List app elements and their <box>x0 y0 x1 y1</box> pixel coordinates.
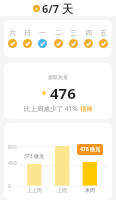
button[interactable]: 二 <box>51 29 66 48</box>
staticText: 476 微克 <box>80 146 100 153</box>
other: Streak <box>33 5 40 12</box>
staticText: 很棒 <box>80 105 93 113</box>
staticText: 476 <box>50 83 76 103</box>
staticText: 0 <box>8 183 11 190</box>
staticText: 800 <box>8 144 17 151</box>
staticText: 五 <box>100 29 107 37</box>
staticText: 400 <box>8 160 17 167</box>
staticText: 二 <box>55 29 62 37</box>
staticText: 上周 <box>57 187 67 193</box>
staticText: 比上周减少了 41% <box>24 104 80 113</box>
staticText: 四 <box>85 29 92 37</box>
button[interactable]: 六 <box>5 29 20 48</box>
button[interactable]: 一 <box>35 29 50 48</box>
button[interactable]: 四 <box>81 29 96 48</box>
staticText: 6/7 天 <box>42 1 74 16</box>
button[interactable]: Streak <box>33 1 74 16</box>
staticText: 六 <box>9 29 16 37</box>
button[interactable]: 摄取热量 <box>4 63 112 119</box>
button[interactable]: 三 <box>66 29 81 48</box>
staticText: 373 微克 <box>24 153 44 160</box>
staticText: 摄取热量 <box>48 74 68 80</box>
button[interactable]: 五 <box>96 29 111 48</box>
staticText: 日 <box>24 29 31 37</box>
staticText: 三 <box>70 29 77 37</box>
button[interactable]: 日 <box>20 29 35 48</box>
staticText: 上上周 <box>27 187 42 193</box>
staticText: 本周 <box>85 187 95 193</box>
staticText: 一 <box>39 29 46 37</box>
